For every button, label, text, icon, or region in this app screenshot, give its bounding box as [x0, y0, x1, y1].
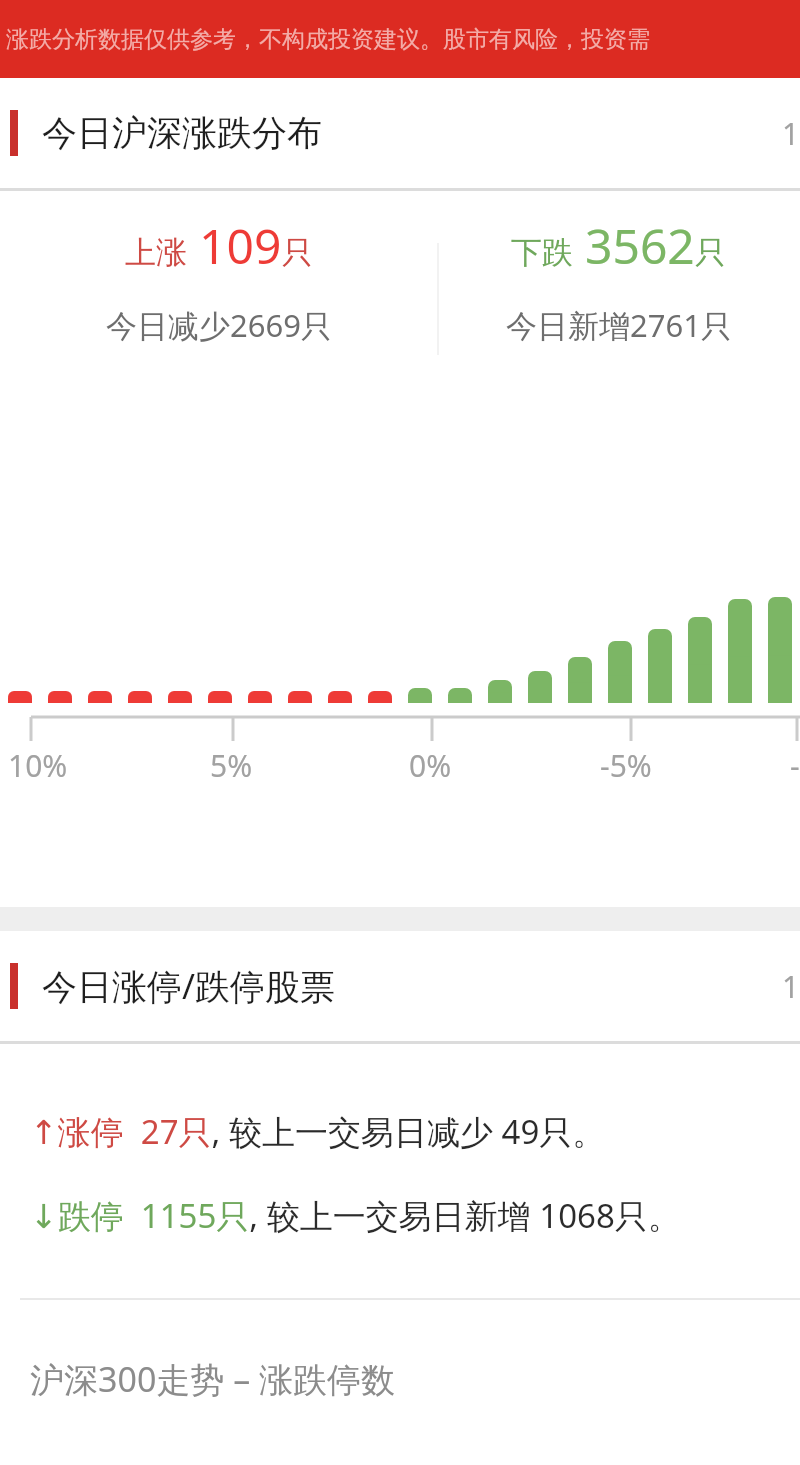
staticText: -5% [600, 745, 652, 786]
staticText: 5% [210, 745, 253, 786]
staticText: 上涨 [125, 233, 187, 272]
staticText: 1 [782, 113, 800, 154]
button[interactable]: 沪深300走势 – 涨跌停数 [30, 1356, 396, 1402]
staticText: 10% [8, 745, 68, 786]
staticText: 只 [282, 233, 313, 272]
staticText: 3562 [585, 213, 695, 278]
staticText: 今日沪深涨跌分布 [42, 111, 322, 155]
staticText: ↑涨停 27只, 较上一交易日减少 49只。 [30, 1109, 606, 1154]
button[interactable]: 涨跌分析数据仅供参考，不构成投资建议。股市有风险，投资需 [0, 0, 800, 78]
button[interactable]: 今日涨停/跌停股票 [0, 931, 800, 1041]
staticText: 1 [782, 966, 800, 1007]
staticText: 只 [695, 233, 726, 272]
button[interactable]: 今日沪深涨跌分布 [0, 78, 800, 188]
staticText: ↓跌停 1155只, 较上一交易日新增 1068只。 [30, 1193, 681, 1238]
staticText: 今日新增2761只 [506, 304, 732, 346]
button[interactable]: ↑涨停 27只, 较上一交易日减少 49只。 [0, 1100, 800, 1162]
staticText: 今日涨停/跌停股票 [42, 962, 336, 1010]
staticText: 今日减少2669只 [106, 304, 332, 346]
button[interactable]: 上涨 [0, 191, 437, 395]
staticText: 0% [409, 745, 452, 786]
staticText: 涨跌分析数据仅供参考，不构成投资建议。股市有风险，投资需 [6, 25, 650, 54]
button[interactable]: 下跌 [437, 191, 800, 395]
staticText: 109 [199, 213, 282, 278]
button[interactable]: ↓跌停 1155只, 较上一交易日新增 1068只。 [0, 1184, 800, 1246]
staticText: 下跌 [511, 233, 573, 272]
staticText: - [790, 745, 800, 786]
